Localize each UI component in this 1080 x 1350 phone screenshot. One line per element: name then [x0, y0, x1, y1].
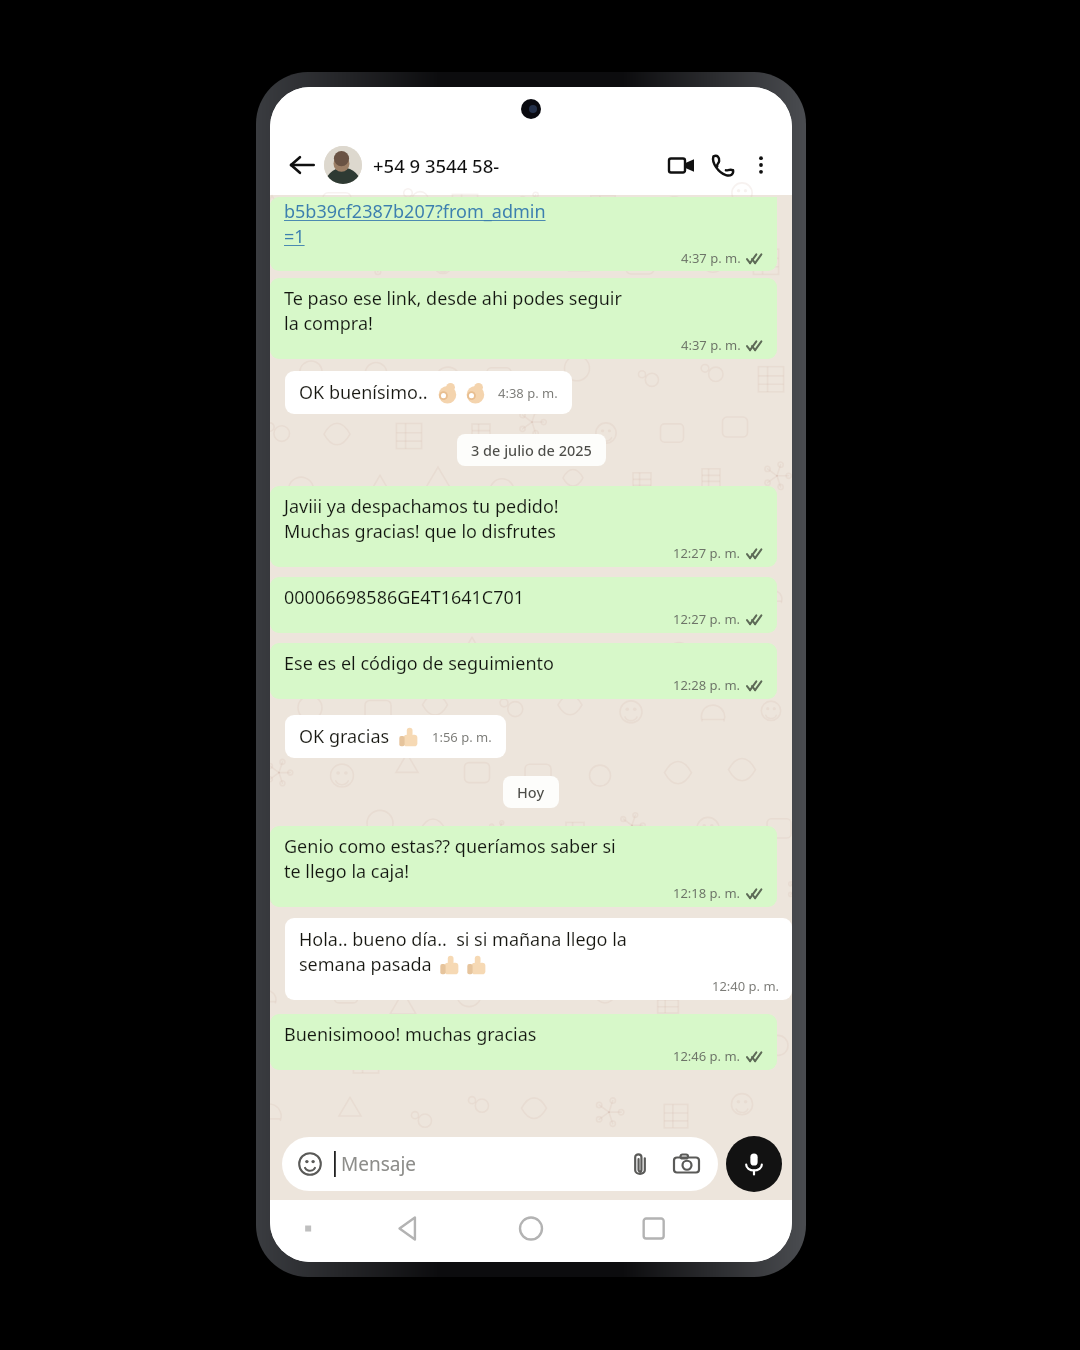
- button[interactable]: Genio como estas?? queríamos saber si: [270, 826, 777, 907]
- button[interactable]: Ese es el código de seguimiento: [270, 643, 777, 699]
- staticText: +54 9 3544 58-: [373, 153, 500, 178]
- staticText: la compra!: [284, 311, 373, 336]
- button[interactable]: Attach: [624, 1148, 656, 1180]
- staticText: Hoy: [517, 782, 545, 802]
- button[interactable]: Voice message: [726, 1136, 782, 1192]
- staticText: 4:37 p. m.: [681, 336, 741, 354]
- staticText: Te paso ese link, desde ahi podes seguir: [284, 286, 622, 311]
- staticText: 12:27 p. m.: [673, 610, 741, 628]
- button[interactable]: Video call: [660, 144, 702, 186]
- button[interactable]: Contact photo: [324, 146, 362, 184]
- staticText: 12:27 p. m.: [673, 544, 741, 562]
- button[interactable]: b5b39cf2387b207?from_admin: [270, 197, 777, 271]
- staticText: Ese es el código de seguimiento: [284, 651, 554, 676]
- staticText: Genio como estas?? queríamos saber si: [284, 834, 616, 859]
- staticText: Buenisimooo! muchas gracias: [284, 1022, 537, 1047]
- button[interactable]: Javiii ya despachamos tu pedido!: [270, 486, 777, 567]
- staticText: 12:28 p. m.: [673, 676, 741, 694]
- staticText: 3 de julio de 2025: [471, 440, 592, 460]
- staticText: te llego la caja!: [284, 859, 410, 884]
- staticText: =1: [284, 224, 305, 249]
- button[interactable]: 3 de julio de 2025: [457, 434, 606, 466]
- button[interactable]: Buenisimooo! muchas gracias: [270, 1014, 777, 1070]
- button[interactable]: Back: [282, 145, 322, 185]
- staticText: 12:40 p. m.: [712, 977, 780, 995]
- staticText: Muchas gracias! que lo disfrutes: [284, 519, 556, 544]
- button[interactable]: Emoji: [282, 1137, 718, 1191]
- staticText: Javiii ya despachamos tu pedido!: [284, 494, 559, 519]
- button[interactable]: Te paso ese link, desde ahi podes seguir: [270, 278, 777, 359]
- button[interactable]: OK buenísimo..: [285, 371, 572, 414]
- staticText: Hola.. bueno día.. si si mañana llego la: [299, 927, 627, 952]
- button[interactable]: Hola.. bueno día.. si si mañana llego la: [285, 918, 792, 1000]
- staticText: semana pasada: [299, 952, 432, 977]
- button[interactable]: Call: [702, 144, 744, 186]
- button[interactable]: OK gracias: [285, 715, 506, 758]
- staticText: 12:18 p. m.: [673, 884, 741, 902]
- staticText: OK buenísimo..: [299, 380, 428, 405]
- staticText: 4:37 p. m.: [681, 249, 741, 267]
- staticText: Mensaje: [341, 1151, 417, 1177]
- button[interactable]: Emoji: [296, 1150, 324, 1178]
- button[interactable]: Camera: [670, 1148, 702, 1180]
- staticText: 1:56 p. m.: [432, 728, 492, 746]
- staticText: OK gracias: [299, 724, 390, 749]
- button[interactable]: +54 9 3544 58-: [373, 153, 660, 178]
- staticText: 4:38 p. m.: [498, 384, 558, 402]
- button[interactable]: 00006698586GE4T1641C701: [270, 577, 777, 633]
- staticText: b5b39cf2387b207?from_admin: [284, 199, 546, 224]
- button[interactable]: Hoy: [503, 776, 559, 808]
- staticText: 12:46 p. m.: [673, 1047, 741, 1065]
- staticText: 00006698586GE4T1641C701: [284, 585, 525, 610]
- button[interactable]: More options: [744, 148, 778, 182]
